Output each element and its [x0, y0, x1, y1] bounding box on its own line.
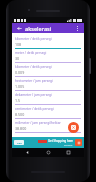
- button[interactable]: centimeter / detik persegi: [15, 105, 81, 119]
- button[interactable]: Navigate up: [15, 24, 23, 32]
- staticText: 38.800: [15, 126, 27, 131]
- staticText: 30: [15, 56, 20, 61]
- staticText: ADS: [17, 141, 22, 144]
- staticText: kilometer / detik persegi: [15, 65, 52, 69]
- button[interactable]: meter / detik persegi: [15, 49, 81, 63]
- button[interactable]: dekameter / jam persegi: [15, 91, 81, 105]
- staticText: 1.5: [15, 98, 21, 103]
- staticText: 108: [15, 42, 22, 47]
- button[interactable]: Install app: [75, 139, 82, 146]
- button[interactable]: Back: [23, 148, 32, 157]
- button[interactable]: hectometer / jam persegi: [15, 77, 81, 91]
- button[interactable]: More options: [73, 24, 81, 32]
- staticText: Install it: [64, 144, 73, 147]
- button[interactable]: Clear: [68, 122, 79, 133]
- staticText: akselerasi: [25, 25, 52, 32]
- staticText: dekameter / jam persegi: [15, 93, 52, 97]
- staticText: Get Shopping here: [48, 139, 73, 143]
- staticText: kilometer / detik persegi: [15, 37, 52, 41]
- button[interactable]: Recent apps: [64, 148, 73, 157]
- button[interactable]: kilometer / detik persegi: [15, 35, 81, 49]
- staticText: 1.005: [15, 84, 25, 89]
- staticText: centimeter / detik persegi: [15, 107, 54, 111]
- button[interactable]: ADS: [12, 137, 84, 148]
- staticText: meter / detik persegi: [15, 51, 47, 55]
- staticText: milimeter / jam persegi/hektar: [15, 121, 61, 125]
- button[interactable]: Home: [44, 148, 53, 157]
- button[interactable]: milimeter / jam persegi/hektar: [15, 119, 81, 133]
- staticText: 8.500: [15, 112, 25, 117]
- button[interactable]: kilometer / detik persegi: [15, 63, 81, 77]
- staticText: 0.009: [15, 70, 25, 75]
- staticText: hectometer / jam persegi: [15, 79, 53, 83]
